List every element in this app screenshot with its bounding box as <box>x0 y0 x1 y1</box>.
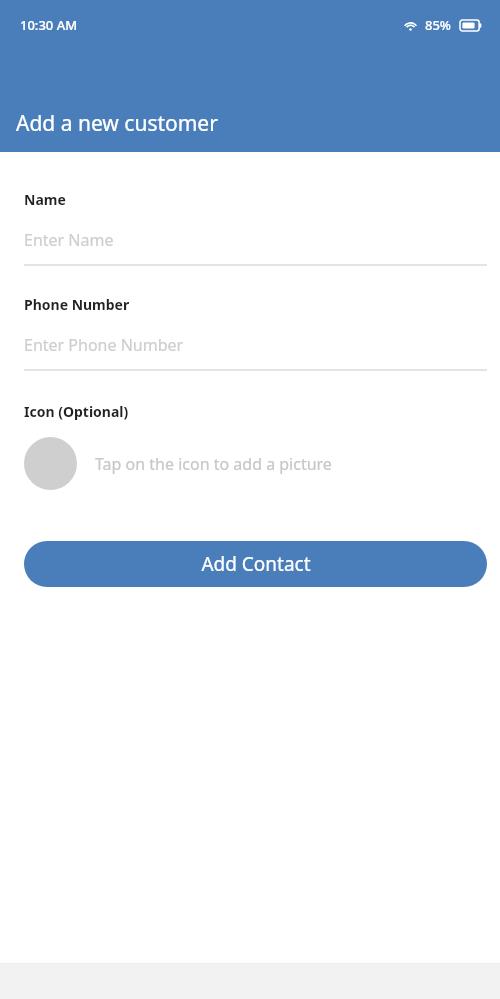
staticText: Icon (Optional) <box>24 402 129 421</box>
staticText: Add a new customer <box>16 109 218 138</box>
staticText: Enter Name <box>24 229 114 251</box>
staticText: 10:30 AM <box>20 16 78 34</box>
button[interactable]: Enter Name <box>24 227 487 253</box>
button[interactable]: Add Contact <box>24 541 487 587</box>
staticText: 85% <box>425 16 451 34</box>
staticText: Enter Phone Number <box>24 334 184 356</box>
button[interactable]: Enter Phone Number <box>24 332 487 358</box>
staticText: Phone Number <box>24 295 130 314</box>
staticText: Tap on the icon to add a picture <box>95 453 332 475</box>
staticText: Name <box>24 190 66 209</box>
staticText: Add Contact <box>201 551 311 577</box>
button[interactable]: Add a picture <box>24 437 77 490</box>
